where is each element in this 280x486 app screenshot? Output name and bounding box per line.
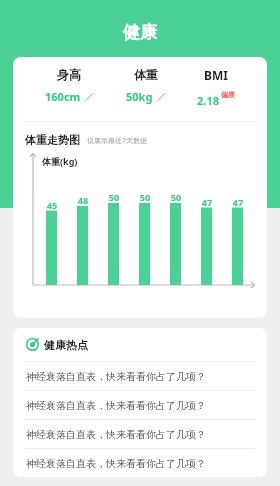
button[interactable]: 体重 bbox=[126, 67, 165, 104]
button[interactable]: 神经衰落自直表，快来看看你占了几项？ bbox=[13, 362, 267, 390]
staticText: 2.18 bbox=[197, 93, 219, 108]
button[interactable]: 神经衰落自直表，快来看看你占了几项？ bbox=[13, 391, 267, 419]
staticText: 体重 bbox=[134, 67, 158, 82]
staticText: 身高 bbox=[57, 67, 81, 82]
staticText: 健康 bbox=[123, 22, 157, 43]
staticText: 47 bbox=[228, 196, 248, 208]
staticText: 50kg bbox=[126, 89, 153, 104]
staticText: 偏瘦 bbox=[221, 90, 235, 99]
staticText: 仅展示最近7天数据 bbox=[87, 136, 148, 146]
staticText: 50 bbox=[104, 191, 124, 203]
staticText: 神经衰落自直表，快来看看你占了几项？ bbox=[26, 399, 206, 412]
staticText: 45 bbox=[42, 199, 62, 211]
button[interactable]: 神经衰落自直表，快来看看你占了几项？ bbox=[13, 449, 267, 477]
staticText: 50 bbox=[135, 191, 155, 203]
staticText: 体重(kg) bbox=[42, 155, 78, 167]
button[interactable]: 身高 bbox=[45, 67, 93, 104]
other: Health hotspot bbox=[26, 338, 39, 351]
staticText: BMI bbox=[204, 67, 228, 83]
staticText: 体重走势图 bbox=[25, 133, 80, 147]
staticText: 50 bbox=[166, 191, 186, 203]
staticText: 神经衰落自直表，快来看看你占了几项？ bbox=[26, 428, 206, 441]
button[interactable]: 神经衰落自直表，快来看看你占了几项？ bbox=[13, 420, 267, 448]
other: Edit bbox=[157, 93, 165, 101]
button[interactable]: BMI bbox=[197, 67, 235, 105]
staticText: 神经衰落自直表，快来看看你占了几项？ bbox=[26, 370, 206, 383]
staticText: 神经衰落自直表，快来看看你占了几项？ bbox=[26, 457, 206, 470]
staticText: 47 bbox=[197, 196, 217, 208]
staticText: 48 bbox=[73, 194, 93, 206]
staticText: 160cm bbox=[45, 89, 81, 104]
staticText: 健康热点 bbox=[44, 338, 88, 352]
other: Edit bbox=[85, 93, 93, 101]
